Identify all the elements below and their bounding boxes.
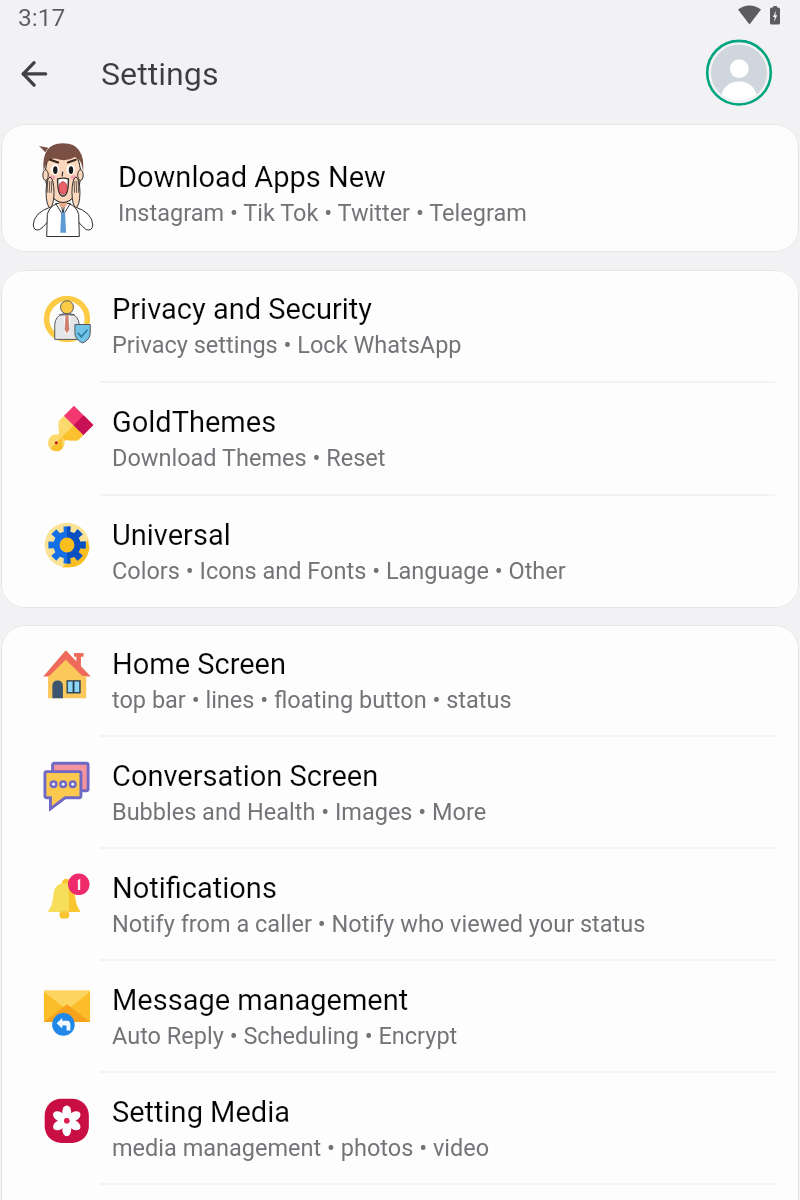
staticText: Notify from a caller • Notify who viewed… [112, 910, 646, 938]
button[interactable]: Notifications [1, 849, 799, 961]
staticText: Universal [112, 518, 231, 552]
button[interactable]: Universal [1, 496, 799, 608]
button[interactable]: Setting Media [1, 1073, 799, 1185]
staticText: Settings [101, 55, 219, 93]
staticText: Notifications [112, 871, 277, 905]
staticText: Colors • Icons and Fonts • Language • Ot… [112, 557, 566, 585]
button[interactable]: Privacy and Security [1, 270, 799, 383]
staticText: top bar • lines • floating button • stat… [112, 686, 512, 714]
button[interactable]: Profile [705, 39, 773, 107]
staticText: GoldThemes [112, 405, 277, 439]
staticText: Setting Media [112, 1095, 290, 1129]
staticText: Bubbles and Health • Images • More [112, 798, 487, 826]
button[interactable]: GoldThemes [1, 383, 799, 496]
staticText: Privacy and Security [112, 292, 373, 326]
staticText: Instagram • Tik Tok • Twitter • Telegram [118, 199, 527, 227]
staticText: Privacy settings • Lock WhatsApp [112, 331, 462, 359]
staticText: Download Themes • Reset [112, 444, 386, 472]
staticText: Auto Reply • Scheduling • Encrypt [112, 1022, 458, 1050]
button[interactable]: Back [0, 40, 68, 108]
button[interactable]: Home Screen [1, 625, 799, 737]
button[interactable]: Conversation Screen [1, 737, 799, 849]
staticText: Home Screen [112, 647, 286, 681]
staticText: 3:17 [18, 3, 66, 32]
staticText: media management • photos • video [112, 1134, 490, 1162]
button[interactable]: Message management [1, 961, 799, 1073]
staticText: Conversation Screen [112, 759, 379, 793]
staticText: Download Apps New [118, 160, 386, 194]
button[interactable]: Download Apps New [1, 124, 799, 252]
staticText: Message management [112, 983, 409, 1017]
